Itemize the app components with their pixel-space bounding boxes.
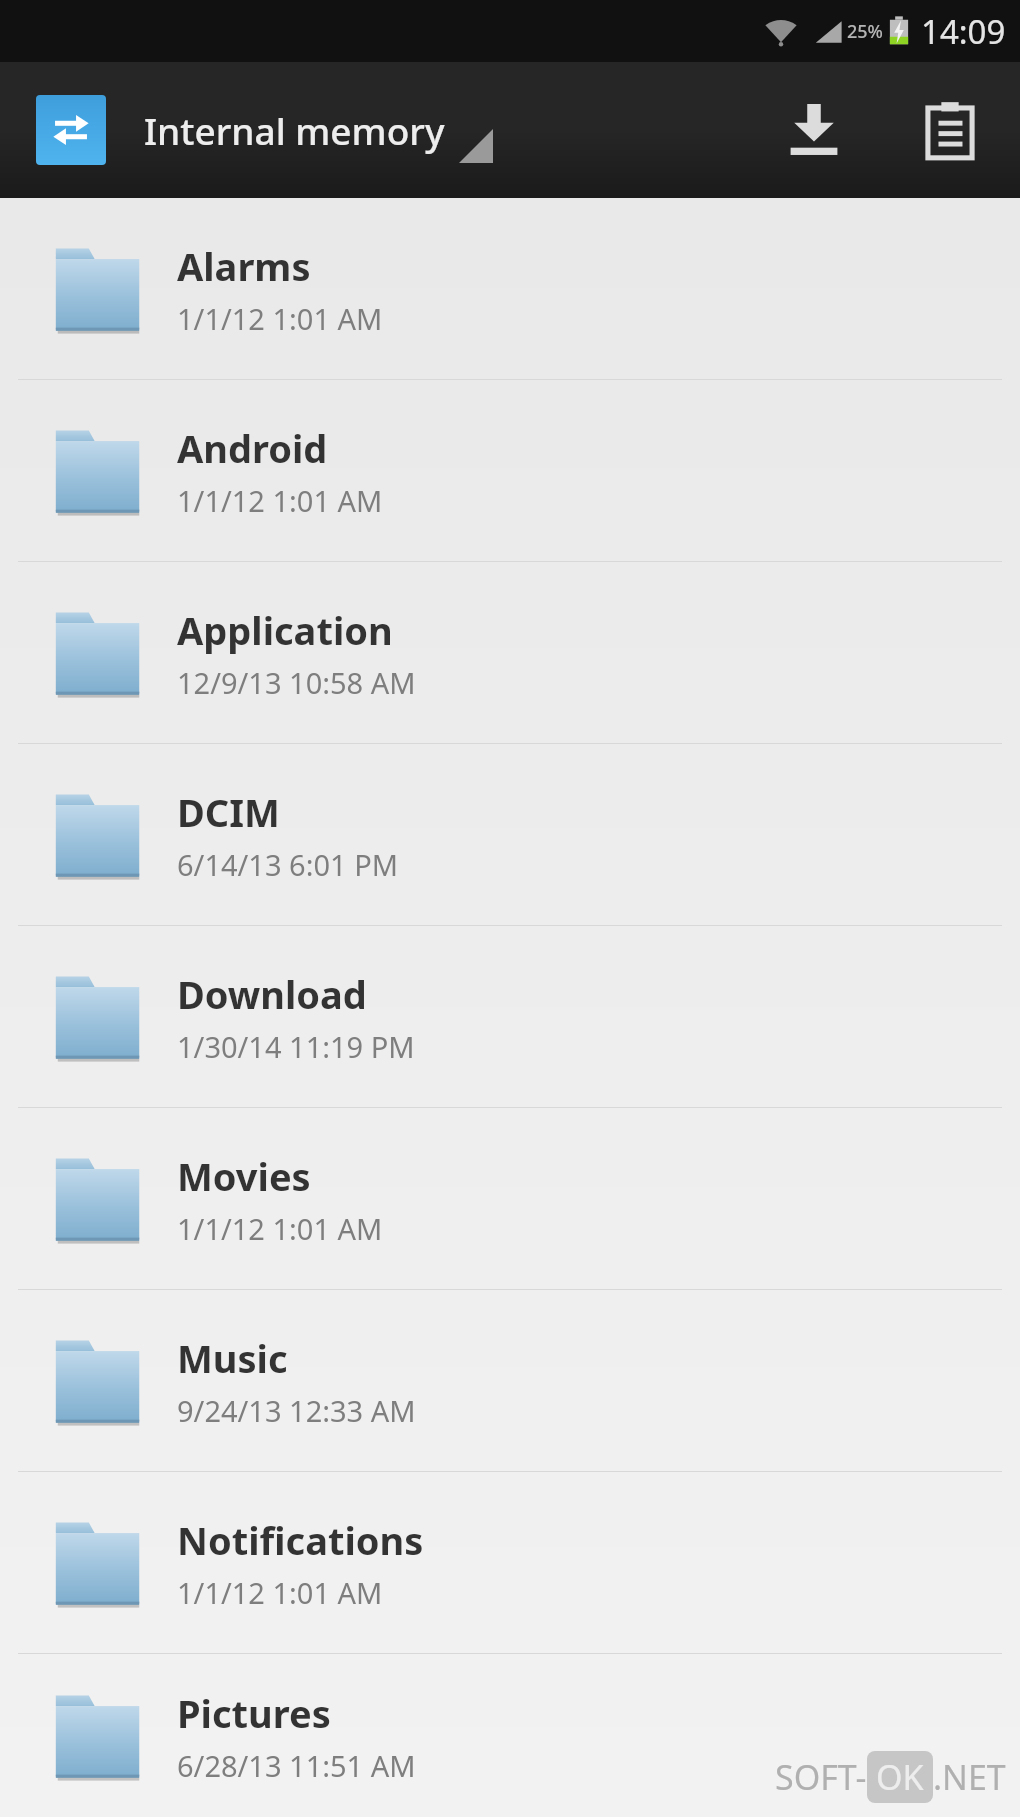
staticText: Notifications	[177, 1514, 424, 1566]
button[interactable]: Clipboard	[902, 82, 998, 178]
staticText: Pictures	[177, 1687, 331, 1739]
staticText: 1/1/12 1:01 AM	[177, 1209, 383, 1248]
button[interactable]: DCIM	[0, 744, 1020, 925]
staticText: SOFT-	[775, 1754, 867, 1800]
staticText: 12/9/13 10:58 AM	[177, 663, 416, 702]
staticText: DCIM	[177, 786, 280, 838]
staticText: 9/24/13 12:33 AM	[177, 1391, 416, 1430]
staticText: Alarms	[177, 240, 311, 292]
button[interactable]: App icon	[36, 95, 106, 165]
staticText: 1/30/14 11:19 PM	[177, 1027, 415, 1066]
staticText: OK	[876, 1754, 924, 1800]
staticText: Music	[177, 1332, 288, 1384]
staticText: Movies	[177, 1150, 311, 1202]
staticText: 6/28/13 11:51 AM	[177, 1746, 416, 1785]
staticText: 1/1/12 1:01 AM	[177, 1573, 383, 1612]
staticText: Application	[177, 604, 393, 656]
staticText: 14:09	[921, 9, 1006, 54]
button[interactable]: Download	[0, 926, 1020, 1107]
button[interactable]: Movies	[0, 1108, 1020, 1289]
staticText: 1/1/12 1:01 AM	[177, 299, 383, 338]
button[interactable]: Notifications	[0, 1472, 1020, 1653]
button[interactable]: Alarms	[0, 198, 1020, 379]
staticText: 25%	[847, 19, 883, 44]
staticText: .NET	[933, 1754, 1006, 1800]
staticText: 6/14/13 6:01 PM	[177, 845, 398, 884]
button[interactable]: Music	[0, 1290, 1020, 1471]
staticText: Internal memory	[144, 105, 445, 155]
button[interactable]: Pictures	[0, 1654, 1020, 1817]
staticText: Download	[177, 968, 367, 1020]
staticText: 1/1/12 1:01 AM	[177, 481, 383, 520]
staticText: Android	[177, 422, 328, 474]
button[interactable]: Android	[0, 380, 1020, 561]
button[interactable]: Download	[766, 82, 862, 178]
button[interactable]: Internal memory	[144, 62, 766, 198]
button[interactable]: Application	[0, 562, 1020, 743]
